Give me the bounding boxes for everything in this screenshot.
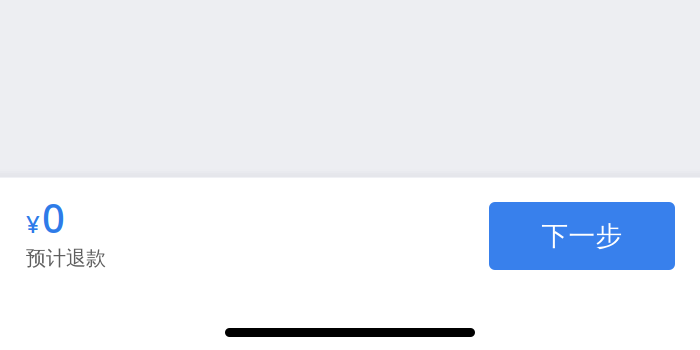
staticText: ¥ [26,208,40,240]
staticText: 下一步 [541,220,622,252]
staticText: 0 [42,191,65,244]
button[interactable]: 下一步 [489,202,675,270]
staticText: 预计退款 [26,246,106,271]
